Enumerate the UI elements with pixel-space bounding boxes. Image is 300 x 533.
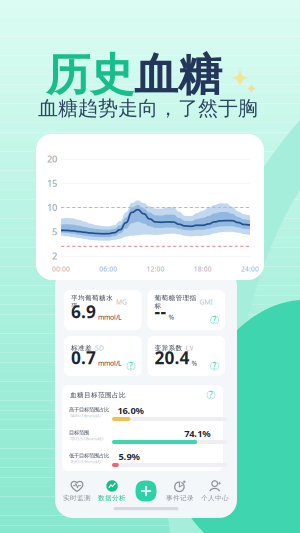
staticText: 06:00	[99, 265, 117, 273]
staticText: GMI	[199, 298, 212, 306]
staticText: 平均葡萄糖水平	[71, 294, 113, 310]
staticText: ?	[209, 390, 213, 400]
staticText: TBR (<3.9mmol/L)	[70, 459, 101, 464]
staticText: 20.4	[154, 346, 189, 369]
staticText: ?	[212, 361, 216, 371]
staticText: 事件记录	[166, 494, 194, 502]
staticText: 5	[52, 226, 57, 238]
staticText: 15	[47, 177, 57, 189]
staticText: 6.9	[71, 300, 96, 323]
staticText: 12:00	[146, 265, 164, 273]
button[interactable]: 平均葡萄糖水平	[64, 290, 141, 330]
staticText: 实时监测	[63, 494, 91, 502]
staticText: mmol/L	[98, 359, 121, 368]
staticText: 标准差	[71, 344, 92, 352]
staticText: 20	[47, 153, 57, 165]
button[interactable]: 标准差	[64, 336, 141, 376]
button[interactable]: 变异系数	[147, 336, 225, 376]
staticText: 个人中心	[201, 494, 229, 502]
button[interactable]: 数据分析	[96, 479, 128, 503]
staticText: 目标范围	[69, 429, 89, 436]
staticText: SD	[95, 344, 104, 352]
staticText: --	[154, 300, 166, 323]
staticText: %	[168, 313, 174, 322]
staticText: 高于目标范围占比	[69, 406, 109, 413]
staticText: 10	[47, 201, 57, 214]
staticText: mmol/L	[98, 313, 121, 322]
button[interactable]: 实时监测	[61, 479, 93, 503]
staticText: ?	[212, 315, 216, 325]
staticText: 00:00	[52, 265, 70, 273]
button[interactable]: 葡萄糖管理指标	[147, 290, 225, 330]
staticText: 18:00	[194, 265, 212, 273]
staticText: 血糖	[134, 48, 222, 102]
staticText: 低于目标范围占比	[69, 452, 109, 459]
staticText: %	[191, 359, 197, 368]
staticText: 5.9%	[118, 450, 139, 463]
staticText: ?	[129, 361, 133, 371]
staticText: 16.0%	[117, 404, 143, 417]
staticText: 变异系数	[154, 344, 182, 352]
button[interactable]: 事件记录	[164, 479, 196, 503]
button[interactable]: Add record	[131, 479, 161, 503]
staticText: 数据分析	[98, 494, 126, 502]
staticText: 血糖目标范围占比	[70, 391, 126, 399]
staticText: 0.7	[71, 346, 96, 369]
staticText: TIR (3.9-7.8mmol/L)	[70, 436, 103, 441]
button[interactable]: 个人中心	[199, 479, 231, 503]
staticText: 74.1%	[184, 427, 210, 440]
staticText: MG	[116, 298, 127, 306]
staticText: TAR (>7.8mmol/L)	[70, 413, 101, 418]
staticText: 葡萄糖管理指标	[154, 294, 196, 310]
staticText: 历史	[46, 48, 134, 102]
staticText: 2	[52, 250, 57, 262]
staticText: 24:00	[241, 265, 259, 273]
staticText: CV	[185, 344, 193, 352]
staticText: 血糖趋势走向，了然于胸	[38, 96, 258, 121]
